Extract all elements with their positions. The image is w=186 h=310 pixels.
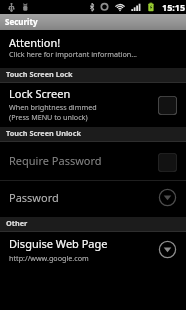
- button[interactable]: Open options: [158, 240, 177, 259]
- button[interactable]: Lock Screen: [0, 83, 186, 127]
- staticText: When brightness dimmed: [9, 102, 97, 112]
- button[interactable]: Toggle: [158, 96, 177, 115]
- staticText: Click here for important information...: [9, 49, 138, 59]
- button[interactable]: Open options: [158, 188, 177, 207]
- button[interactable]: Password: [0, 181, 186, 217]
- button[interactable]: Disguise Web Page: [0, 232, 186, 269]
- staticText: Other: [6, 218, 28, 228]
- staticText: Attention!: [9, 35, 61, 50]
- staticText: Disguise Web Page: [9, 236, 108, 251]
- staticText: Lock Screen: [9, 86, 71, 101]
- button[interactable]: Require Password: [0, 142, 186, 180]
- staticText: Touch Screen Unlock: [6, 128, 81, 138]
- staticText: Security: [5, 16, 38, 27]
- button[interactable]: Toggle: [158, 153, 177, 172]
- staticText: Touch Screen Lock: [6, 69, 73, 79]
- staticText: 15:15: [162, 1, 186, 13]
- staticText: Require Password: [9, 153, 158, 168]
- staticText: Password: [9, 190, 158, 205]
- button[interactable]: Attention!: [0, 30, 186, 68]
- staticText: http://www.google.com: [9, 253, 89, 263]
- staticText: (Press MENU to unlock): [9, 112, 88, 122]
